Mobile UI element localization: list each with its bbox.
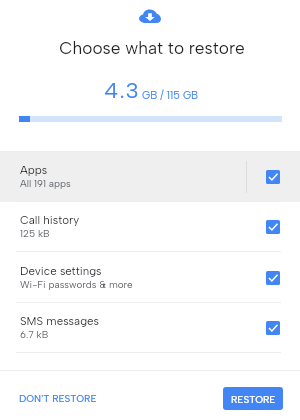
button[interactable]: Device settings: [0, 253, 300, 303]
staticText: 4.3: [104, 77, 140, 103]
button[interactable]: SMS messages: [0, 303, 300, 353]
staticText: 125 kB: [20, 228, 50, 240]
staticText: Wi-Fi passwords & more: [20, 279, 133, 291]
other: Toggle Call history: [266, 220, 280, 234]
staticText: DON'T RESTORE: [19, 392, 97, 404]
staticText: All 191 apps: [20, 178, 71, 190]
other: Toggle Device settings: [266, 271, 280, 285]
staticText: SMS messages: [20, 314, 100, 328]
button[interactable]: RESTORE: [223, 387, 283, 410]
staticText: RESTORE: [231, 393, 276, 405]
staticText: Apps: [20, 163, 48, 177]
staticText: Call history: [20, 213, 80, 227]
staticText: Device settings: [20, 264, 102, 278]
other: Toggle Apps: [266, 170, 280, 184]
button[interactable]: Apps: [0, 152, 300, 202]
staticText: Choose what to restore: [2, 38, 300, 59]
button[interactable]: Call history: [0, 202, 300, 252]
button[interactable]: DON'T RESTORE: [11, 385, 105, 411]
staticText: 6.7 kB: [20, 329, 49, 341]
staticText: GB / 115 GB: [142, 89, 199, 102]
other: Toggle SMS messages: [266, 321, 280, 335]
